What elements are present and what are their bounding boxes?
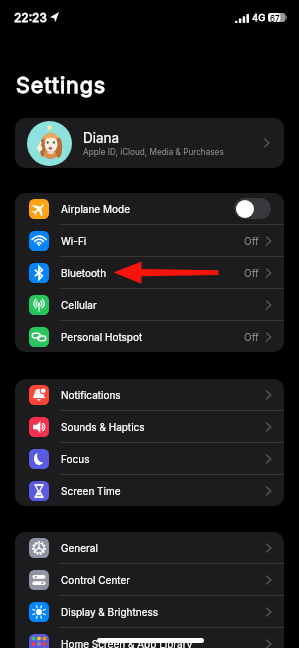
button[interactable]: Focus: [15, 443, 284, 474]
staticText: Screen Time: [61, 485, 266, 497]
button[interactable]: Home Screen & App Library: [15, 628, 284, 648]
staticText: Airplane Mode: [61, 203, 234, 215]
staticText: Sounds & Haptics: [61, 421, 266, 433]
button[interactable]: Sounds & Haptics: [15, 411, 284, 442]
button[interactable]: Airplane Mode: [15, 193, 284, 224]
button[interactable]: Bluetooth: [15, 257, 284, 288]
button[interactable]: Screen Time: [15, 475, 284, 506]
staticText: 67: [270, 14, 280, 24]
staticText: Off: [244, 235, 259, 247]
staticText: Control Center: [61, 574, 266, 586]
button[interactable]: Display & Brightness: [15, 596, 284, 627]
staticText: 4G: [252, 12, 266, 23]
staticText: Display & Brightness: [61, 606, 266, 618]
button[interactable]: Personal Hotspot: [15, 321, 284, 352]
staticText: General: [61, 542, 266, 554]
staticText: Off: [244, 267, 259, 279]
staticText: 22:23: [14, 10, 47, 25]
button[interactable]: Cellular: [15, 289, 284, 320]
staticText: Focus: [61, 453, 266, 465]
staticText: Personal Hotspot: [61, 331, 244, 343]
button[interactable]: Airplane Mode toggle, off: [234, 198, 271, 219]
staticText: Settings: [16, 72, 107, 98]
staticText: Off: [244, 331, 259, 343]
button[interactable]: Notifications: [15, 379, 284, 410]
staticText: Cellular: [61, 299, 266, 311]
staticText: Bluetooth: [61, 267, 244, 279]
staticText: Home Screen & App Library: [61, 638, 266, 648]
button[interactable]: Wi-Fi: [15, 225, 284, 256]
button[interactable]: Control Center: [15, 564, 284, 595]
staticText: Diana: [83, 130, 120, 146]
button[interactable]: General: [15, 532, 284, 563]
staticText: Notifications: [61, 389, 266, 401]
staticText: Wi-Fi: [61, 235, 244, 247]
staticText: Apple ID, iCloud, Media & Purchases: [83, 147, 224, 157]
button[interactable]: Diana: [15, 118, 284, 168]
